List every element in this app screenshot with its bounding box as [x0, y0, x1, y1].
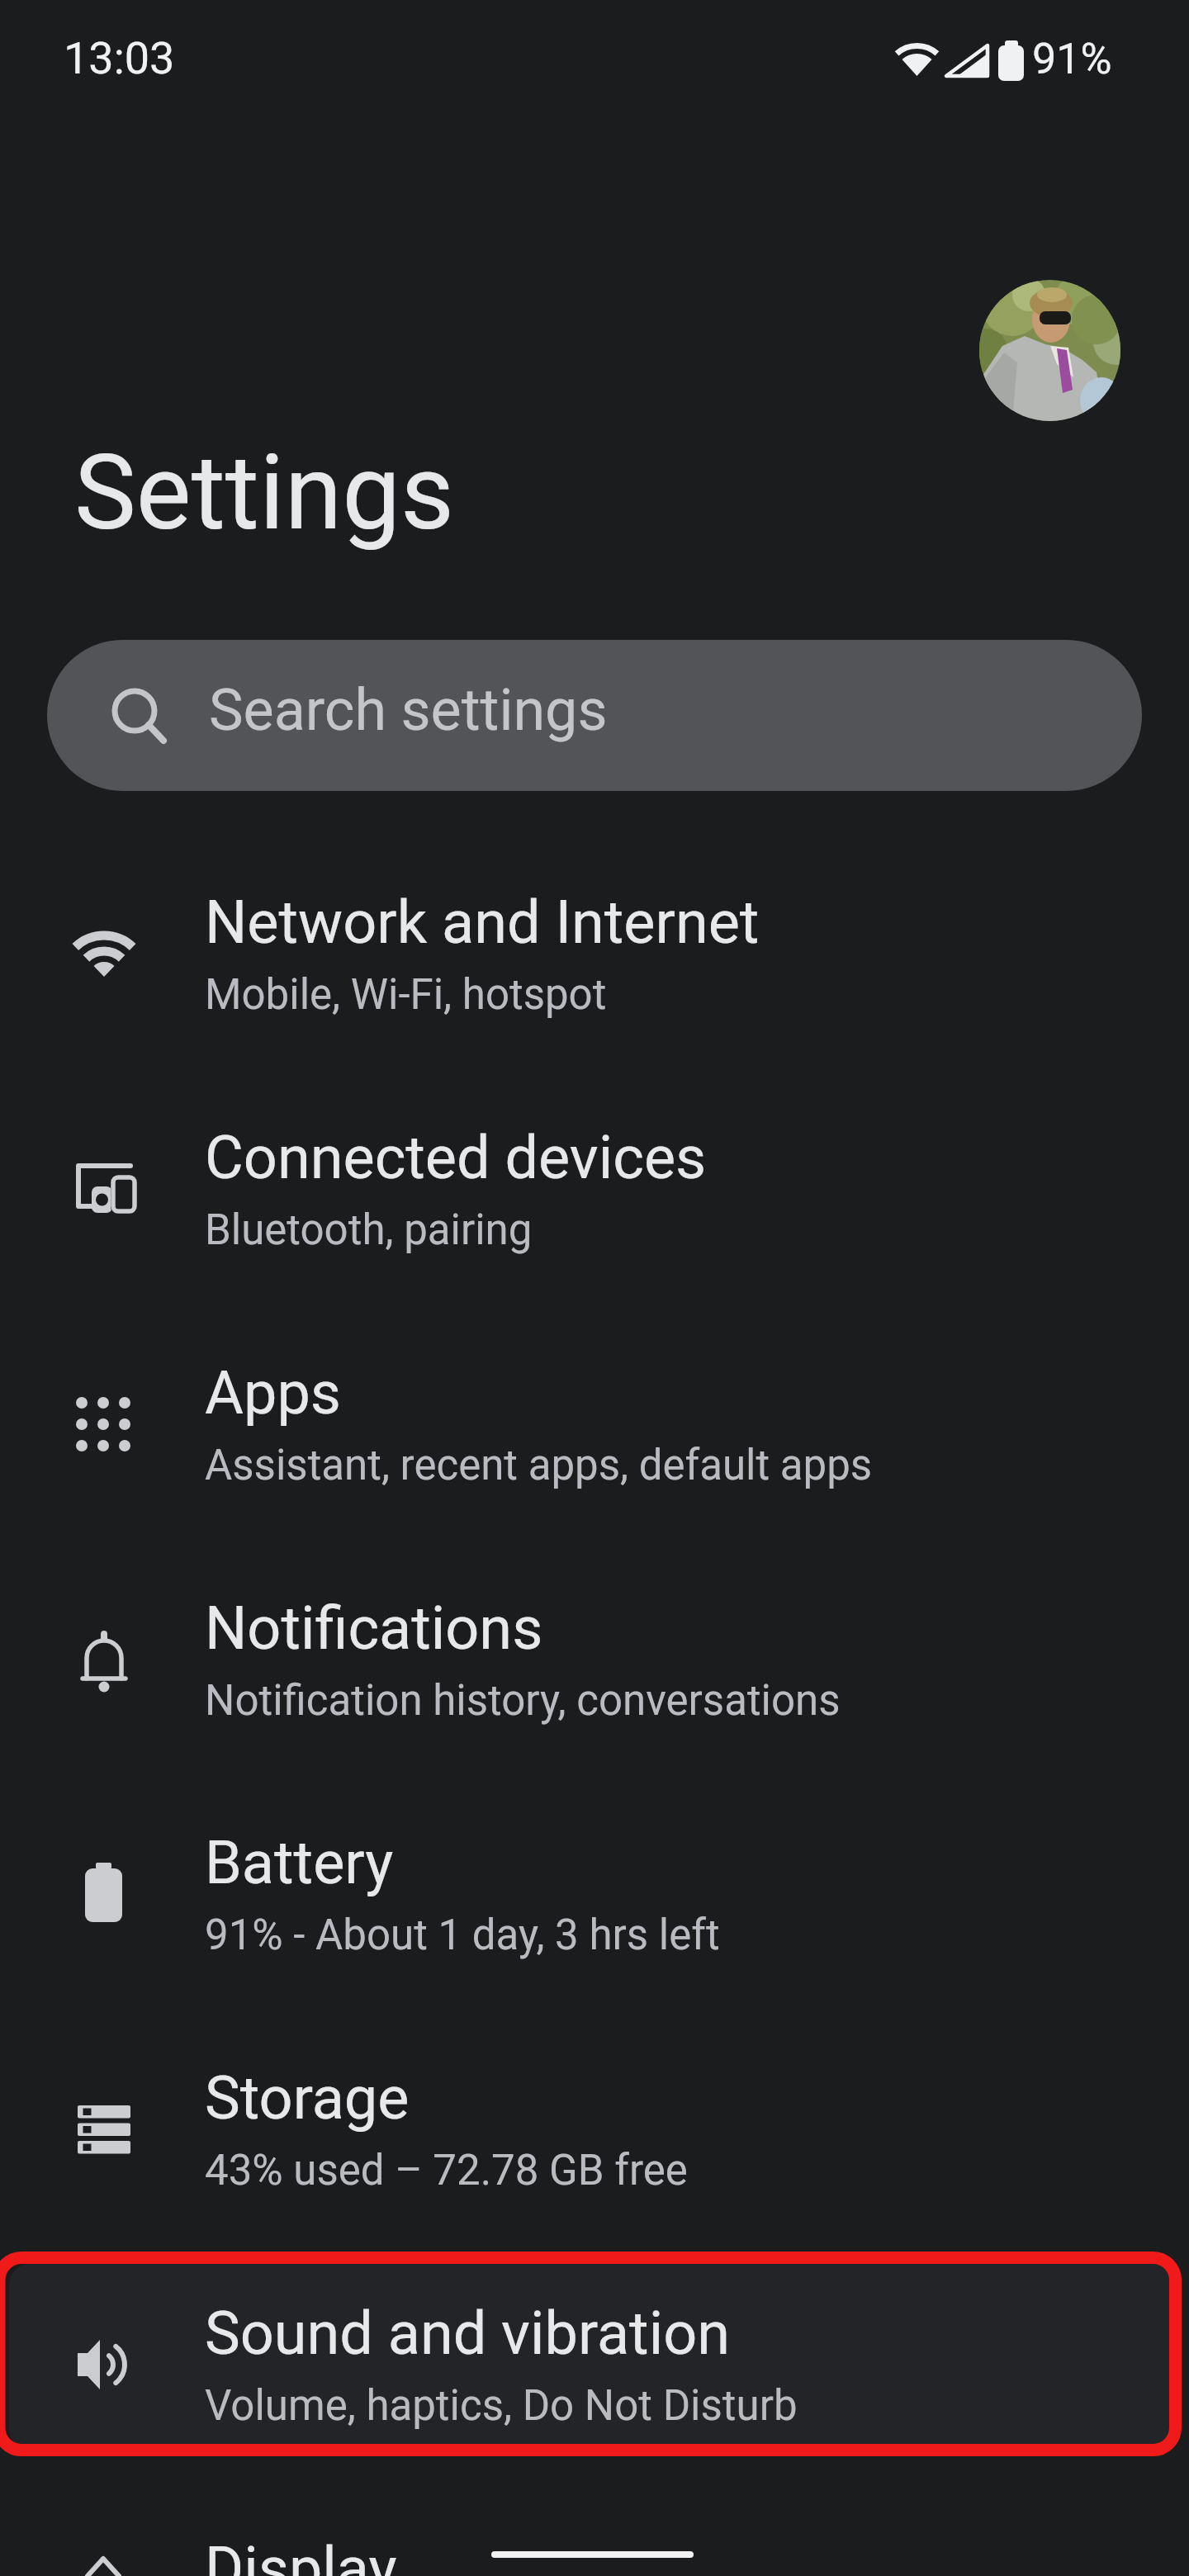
staticText: Mobile, Wi-Fi, hotspot: [205, 970, 607, 1020]
staticText: Apps: [205, 1358, 341, 1428]
button[interactable]: Network and Internet: [0, 841, 1189, 1045]
staticText: Bluetooth, pairing: [205, 1205, 533, 1255]
staticText: 91%: [1032, 34, 1112, 84]
staticText: Settings: [74, 432, 455, 554]
staticText: Connected devices: [205, 1123, 707, 1192]
staticText: Storage: [205, 2063, 410, 2133]
button[interactable]: Notifications: [0, 1546, 1189, 1751]
staticText: Network and Internet: [205, 888, 760, 957]
button[interactable]: Apps: [0, 1311, 1189, 1516]
staticText: Notification history, conversations: [205, 1676, 841, 1726]
staticText: Search settings: [209, 676, 608, 744]
staticText: 91% - About 1 day, 3 hrs left: [205, 1911, 720, 1960]
button[interactable]: Storage: [0, 2016, 1189, 2221]
button[interactable]: Connected devices: [0, 1076, 1189, 1281]
button[interactable]: [979, 280, 1120, 421]
staticText: 13:03: [64, 32, 175, 84]
staticText: Assistant, recent apps, default apps: [205, 1441, 873, 1490]
staticText: Notifications: [205, 1593, 543, 1663]
staticText: Volume, haptics, Do Not Disturb: [205, 2381, 798, 2431]
staticText: Battery: [205, 1828, 394, 1897]
staticText: Sound and vibration: [205, 2299, 730, 2368]
staticText: Display: [205, 2534, 397, 2576]
button[interactable]: Search settings: [47, 640, 1142, 791]
staticText: 43% used – 72.78 GB free: [205, 2146, 688, 2195]
button[interactable]: Battery: [0, 1781, 1189, 1986]
button[interactable]: Display: [0, 2487, 1189, 2576]
button[interactable]: Sound and vibration: [0, 2252, 1189, 2456]
